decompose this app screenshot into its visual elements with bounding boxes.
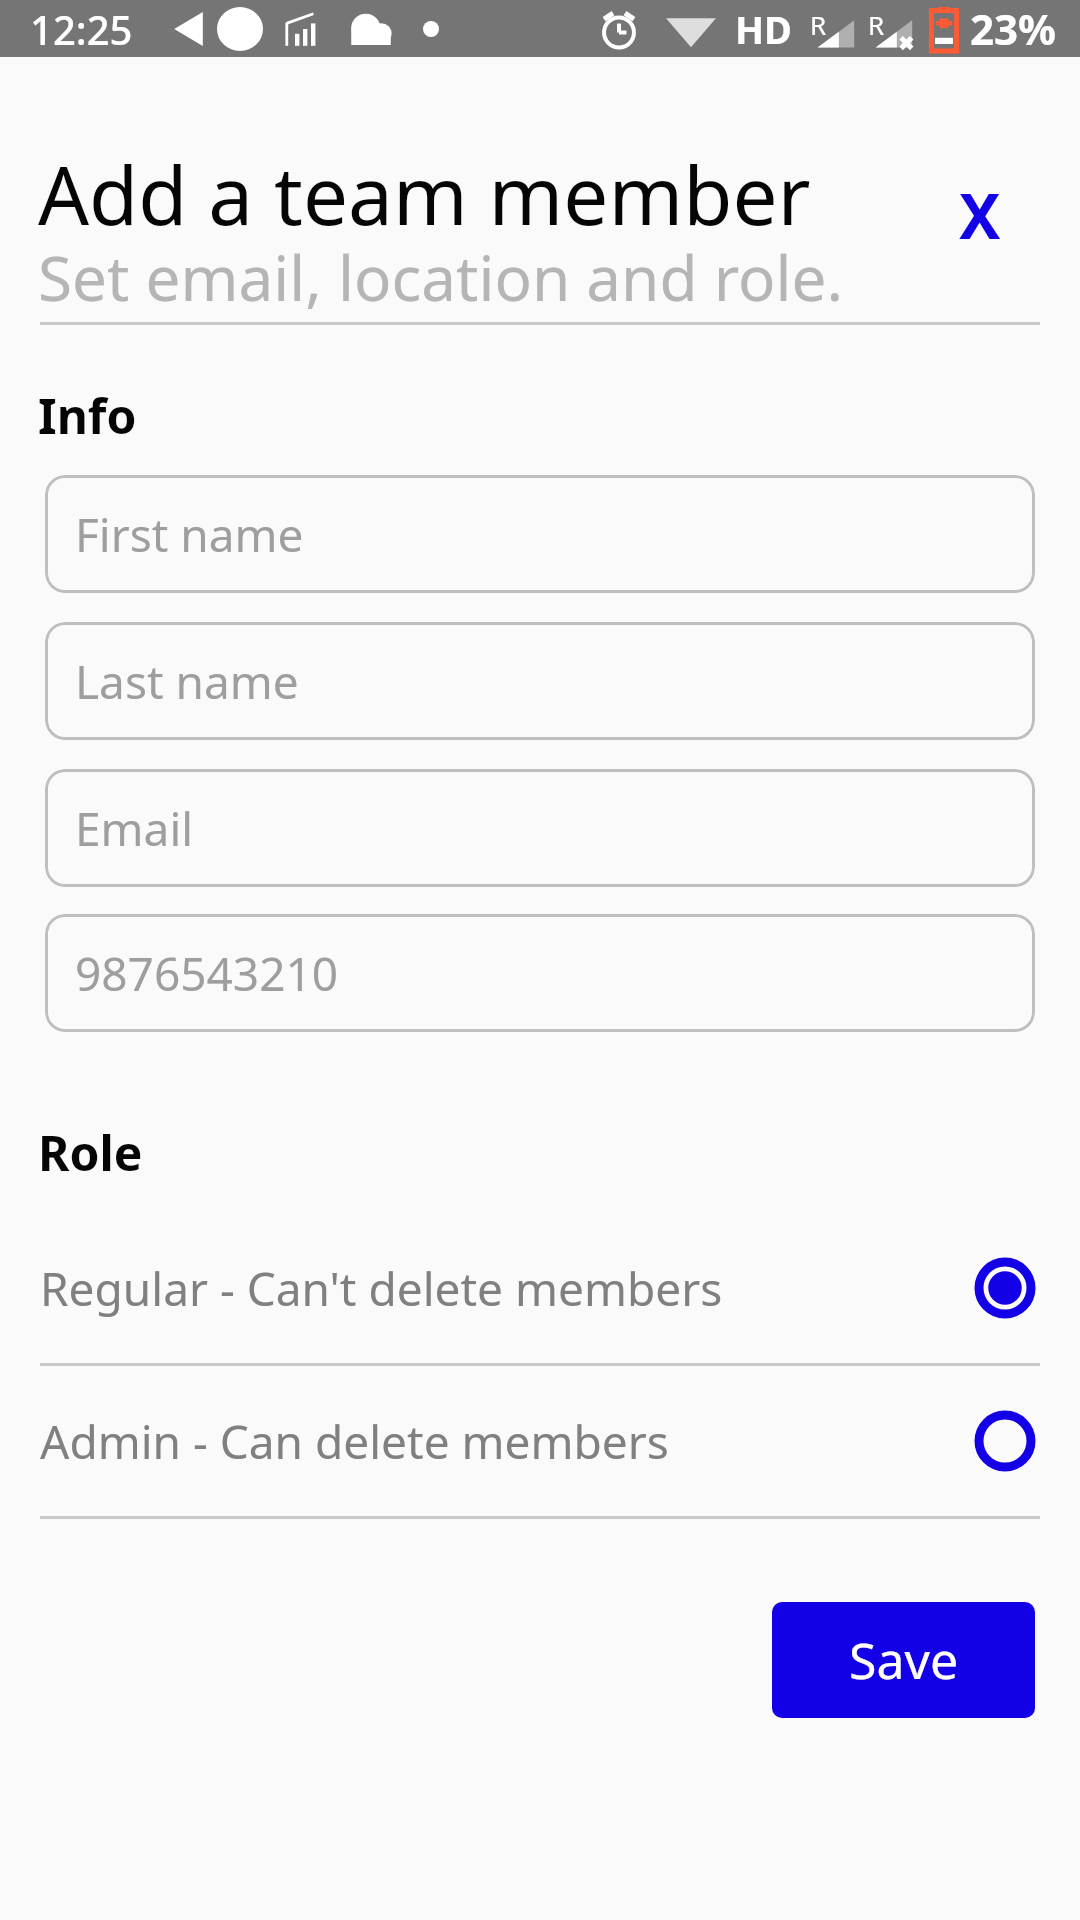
staticText: Role: [38, 1120, 143, 1185]
staticText: HD: [735, 3, 792, 55]
button[interactable]: First name: [45, 475, 1035, 593]
button[interactable]: 9876543210: [45, 914, 1035, 1032]
button[interactable]: Last name: [45, 622, 1035, 740]
button[interactable]: Regular - Can't delete members: [0, 1213, 1080, 1363]
staticText: Save: [849, 1626, 959, 1694]
staticText: R: [810, 7, 827, 42]
staticText: Last name: [75, 650, 299, 713]
button[interactable]: Close: [920, 165, 1040, 265]
staticText: First name: [75, 503, 304, 566]
staticText: 9876543210: [75, 942, 339, 1005]
staticText: Set email, location and role.: [38, 235, 844, 319]
staticText: 12:25: [30, 2, 133, 56]
button[interactable]: Admin - Can delete members: [0, 1366, 1080, 1516]
staticText: Email: [75, 797, 194, 860]
staticText: Add a team member: [38, 139, 811, 248]
button[interactable]: Save: [772, 1602, 1035, 1718]
staticText: R: [868, 7, 885, 42]
staticText: Info: [38, 383, 137, 448]
staticText: 23%: [970, 0, 1056, 57]
staticText: X: [959, 173, 1001, 257]
staticText: Regular - Can't delete members: [40, 1257, 974, 1320]
staticText: Admin - Can delete members: [40, 1410, 974, 1473]
button[interactable]: Email: [45, 769, 1035, 887]
